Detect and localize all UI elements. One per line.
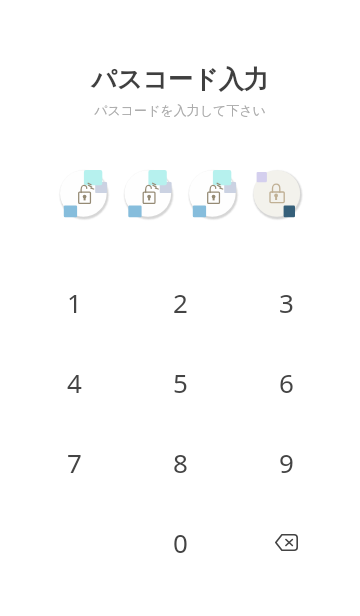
button[interactable]: 8 [127,422,233,502]
staticText: 8 [173,445,188,480]
button[interactable]: 6 [233,342,339,422]
button[interactable]: 5 [127,342,233,422]
staticText: 3 [279,285,294,320]
staticText: 9 [279,445,294,480]
staticText: 1 [67,285,82,320]
staticText: 7 [67,445,82,480]
button[interactable]: 3 [233,262,339,342]
staticText: 2 [173,285,188,320]
staticText: パスコード入力 [91,64,269,95]
staticText: 0 [173,525,188,560]
staticText: 4 [67,365,82,400]
staticText: 6 [279,365,294,400]
button[interactable]: 1 [21,262,127,342]
button[interactable]: 4 [21,342,127,422]
button[interactable]: 9 [233,422,339,502]
staticText: 5 [173,365,188,400]
button[interactable]: 0 [127,502,233,582]
button[interactable]: 2 [127,262,233,342]
button[interactable]: Backspace [233,502,339,582]
button[interactable]: 7 [21,422,127,502]
staticText: パスコードを入力して下さい [94,102,266,118]
